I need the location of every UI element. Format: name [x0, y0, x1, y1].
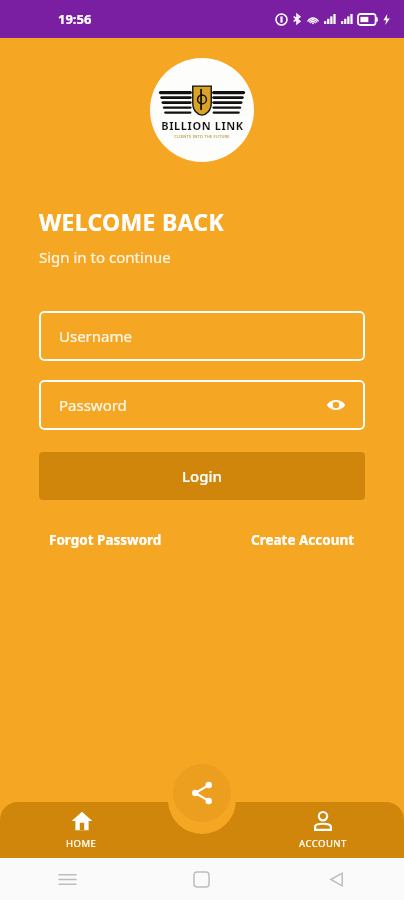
button[interactable]: Forgot Password [45, 527, 166, 553]
button[interactable]: Create Account [247, 527, 359, 553]
button[interactable]: Home [134, 858, 269, 900]
button[interactable]: Show password [323, 392, 349, 418]
staticText: BILLION LINK [161, 118, 244, 133]
staticText: CLIENTS INTO THE FUTURE [174, 134, 230, 139]
button[interactable]: Login [39, 452, 365, 500]
staticText: ACCOUNT [299, 837, 347, 850]
staticText: Create Account [251, 531, 355, 549]
staticText: WELCOME BACK [39, 206, 224, 237]
button[interactable]: Share [173, 764, 231, 822]
button[interactable]: ACCOUNT [241, 802, 404, 858]
staticText: Forgot Password [49, 531, 162, 549]
staticText: Password [59, 395, 127, 415]
button[interactable]: Username [39, 311, 365, 361]
button[interactable]: Recents [0, 858, 134, 900]
staticText: Sign in to continue [39, 247, 171, 267]
staticText: 19:56 [58, 10, 92, 28]
staticText: Username [59, 326, 132, 346]
button[interactable]: Back [269, 858, 404, 900]
staticText: HOME [66, 837, 97, 850]
staticText: Login [182, 466, 222, 486]
button[interactable]: HOME [0, 802, 163, 858]
button[interactable]: Password [39, 380, 365, 430]
